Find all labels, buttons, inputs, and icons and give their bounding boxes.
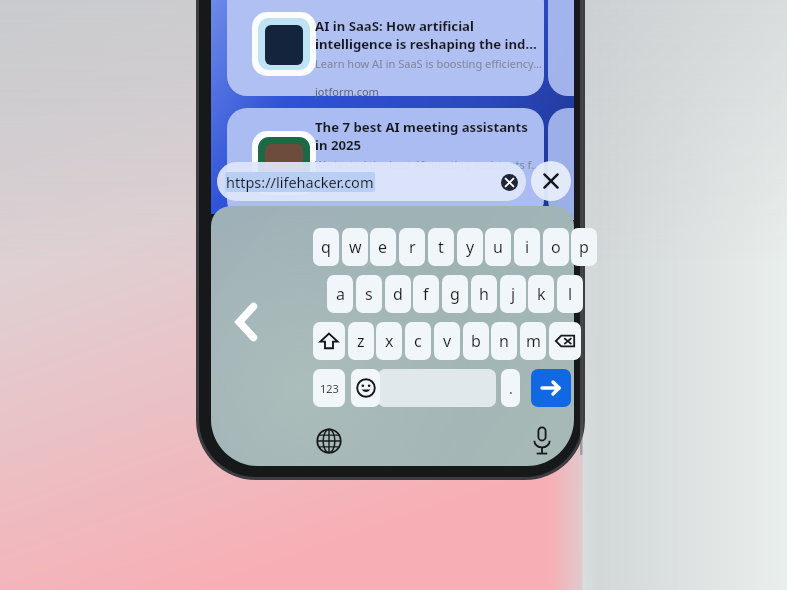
staticText: a [336,283,345,305]
button[interactable]: w [342,228,368,266]
staticText: https://lifehacker.com [226,172,374,192]
button[interactable]: r [399,228,425,266]
staticText: k [537,283,546,305]
staticText: f [423,283,429,305]
staticText: p [579,236,589,258]
button[interactable]: AI in SaaS: How artificial intelligence … [315,17,543,99]
staticText: d [393,283,403,305]
button[interactable]: y [457,228,483,266]
button[interactable]: l [557,275,583,313]
staticText: o [551,236,561,258]
button[interactable]: d [385,275,411,313]
button[interactable]: a [327,275,353,313]
staticText: The 7 best AI meeting assistants in 2025 [315,118,543,154]
button[interactable]: e [370,228,396,266]
button[interactable]: Backspace [549,322,581,360]
button[interactable]: f [413,275,439,313]
button[interactable]: o [543,228,569,266]
button[interactable]: u [485,228,511,266]
staticText: j [511,283,516,305]
button[interactable]: g [442,275,468,313]
button[interactable]: v [434,322,460,360]
button[interactable]: Voice input [530,426,554,455]
staticText: g [450,283,460,305]
button[interactable]: Go [531,369,571,407]
button[interactable]: . [501,369,520,407]
button[interactable]: b [463,322,489,360]
button[interactable]: c [405,322,431,360]
staticText: v [443,330,452,352]
button[interactable]: t [428,228,454,266]
button[interactable]: The 7 best AI meeting assistants in 2025 [315,118,543,172]
button[interactable]: i [514,228,540,266]
staticText: m [526,330,541,352]
staticText: Learn how AI in SaaS is boosting efficie… [315,56,543,71]
button[interactable]: k [528,275,554,313]
staticText: r [409,236,416,258]
staticText: jotform.com [315,84,379,99]
staticText: w [349,236,362,258]
staticText: l [568,283,573,305]
button[interactable]: Change keyboard language [316,428,342,454]
staticText: e [378,236,388,258]
button[interactable]: Emoji [351,369,380,407]
staticText: h [479,283,489,305]
button[interactable]: q [313,228,339,266]
button[interactable]: x [376,322,402,360]
button[interactable]: Close [531,161,571,201]
staticText: We tested the best AI meeting assistants… [315,157,543,172]
staticText: n [499,330,509,352]
button[interactable]: Clear text [499,172,519,192]
staticText: q [321,236,331,258]
staticText: x [385,330,394,352]
button[interactable]: s [356,275,382,313]
staticText: i [525,236,530,258]
staticText: c [414,330,422,352]
staticText: 123 [320,381,339,396]
button[interactable]: https://lifehacker.com [217,162,526,201]
button[interactable]: Shift [313,322,345,360]
button[interactable]: Space [378,369,496,407]
button[interactable]: 123 [313,369,345,407]
staticText: s [365,283,373,305]
button[interactable]: m [520,322,546,360]
staticText: b [471,330,481,352]
staticText: . [509,379,513,398]
staticText: AI in SaaS: How artificial intelligence … [315,17,543,53]
staticText: t [438,236,444,258]
button[interactable]: z [348,322,374,360]
button[interactable]: Back [229,301,263,343]
staticText: z [357,330,365,352]
staticText: y [466,236,475,258]
button[interactable]: h [471,275,497,313]
staticText: u [493,236,503,258]
button[interactable]: p [571,228,597,266]
button[interactable]: n [491,322,517,360]
button[interactable]: j [500,275,526,313]
